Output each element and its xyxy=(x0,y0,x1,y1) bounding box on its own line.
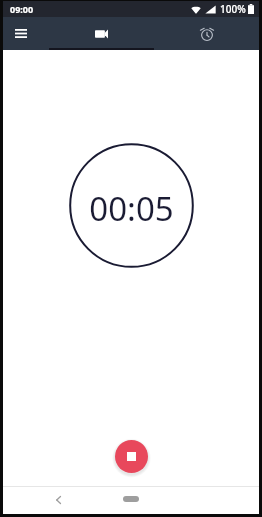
button[interactable]: Open navigation menu xyxy=(3,17,49,50)
button[interactable]: Home xyxy=(109,486,153,514)
button[interactable]: Video recorder tab xyxy=(49,17,154,50)
button[interactable]: Alarm tab xyxy=(154,17,259,50)
staticText: 00:05 xyxy=(89,186,174,231)
staticText: 100% xyxy=(220,2,246,16)
button[interactable]: Back xyxy=(42,486,74,514)
button[interactable]: Stop recording xyxy=(115,440,148,473)
button[interactable]: Recent apps xyxy=(188,486,220,514)
staticText: 09:00 xyxy=(10,3,34,15)
